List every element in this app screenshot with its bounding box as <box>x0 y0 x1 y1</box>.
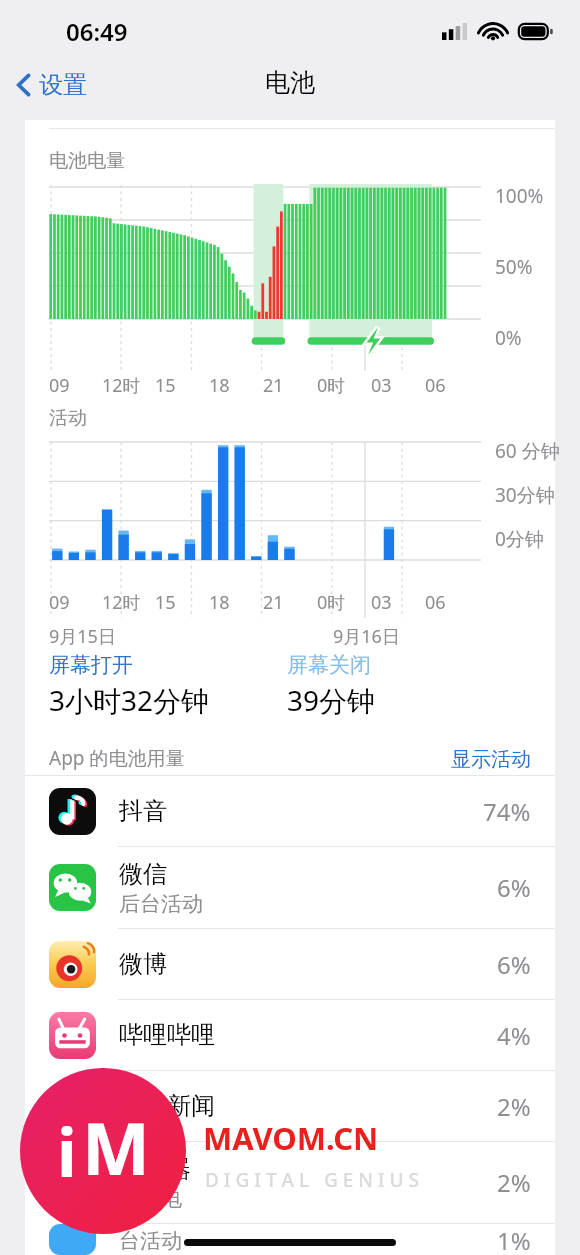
staticText: 1% <box>497 1224 531 1255</box>
staticText: 60 分钟 <box>495 438 560 464</box>
staticText: 9月15日 <box>49 624 116 649</box>
staticText: 15 <box>155 590 176 615</box>
other: App icon <box>49 864 96 911</box>
staticText: 电池 <box>265 67 315 98</box>
staticText: 100% <box>495 183 544 209</box>
button[interactable]: App icon <box>25 929 555 999</box>
staticText: 12时 <box>102 590 141 615</box>
staticText: 设置 <box>39 70 87 100</box>
staticText: 9月16日 <box>333 624 400 649</box>
button[interactable]: App icon <box>25 1142 555 1223</box>
staticText: 30分钟 <box>495 482 555 508</box>
staticText: 74% <box>483 795 531 828</box>
staticText: 21 <box>263 373 284 398</box>
staticText: 12时 <box>102 373 141 398</box>
other: App icon <box>49 1012 96 1059</box>
button[interactable]: 屏幕关闭 <box>287 652 371 678</box>
button[interactable]: App icon <box>25 1071 555 1141</box>
staticText: 电池电量 <box>49 149 125 173</box>
button[interactable]: App icon <box>25 1000 555 1070</box>
staticText: 2% <box>497 1166 531 1199</box>
staticText: 0时 <box>317 590 346 615</box>
button[interactable]: App icon <box>25 1224 555 1255</box>
staticText: M <box>82 1098 150 1196</box>
button[interactable]: 显示活动 <box>439 741 555 775</box>
staticText: 06 <box>425 373 446 398</box>
staticText: 在充电 <box>119 1186 182 1212</box>
staticText: i <box>57 1106 77 1196</box>
staticText: 3小时32分钟 <box>49 681 210 719</box>
other: App icon <box>49 1159 96 1206</box>
staticText: 03 <box>371 590 392 615</box>
staticText: 18 <box>209 590 230 615</box>
other: App icon <box>49 1224 96 1255</box>
staticText: App 的电池用量 <box>49 745 185 771</box>
staticText: 后台活动 <box>119 891 203 917</box>
other: App icon <box>49 788 96 835</box>
staticText: 台活动 <box>119 1228 182 1254</box>
staticText: 09 <box>49 373 70 398</box>
staticText: 浏览器 <box>119 1154 191 1184</box>
button[interactable]: App icon <box>25 847 555 928</box>
staticText: 6% <box>497 948 531 981</box>
staticText: D I G I T A L G E N I U S <box>205 1167 419 1193</box>
staticText: 09 <box>49 590 70 615</box>
staticText: 0时 <box>317 373 346 398</box>
staticText: 03 <box>371 373 392 398</box>
button[interactable]: 设置 <box>0 62 101 120</box>
staticText: 微信 <box>119 859 167 889</box>
staticText: 活动 <box>49 406 87 430</box>
staticText: 50% <box>495 254 533 280</box>
staticText: 4% <box>497 1019 531 1052</box>
staticText: 腾讯新闻 <box>119 1091 215 1121</box>
button[interactable]: App icon <box>25 776 555 846</box>
staticText: 15 <box>155 373 176 398</box>
staticText: 18 <box>209 373 230 398</box>
staticText: 0% <box>495 325 522 351</box>
staticText: 06:49 <box>66 15 128 48</box>
staticText: 21 <box>263 590 284 615</box>
staticText: MAVOM.CN <box>203 1117 379 1159</box>
staticText: 2% <box>497 1090 531 1123</box>
other: App icon <box>49 1083 96 1130</box>
staticText: 39分钟 <box>287 681 376 719</box>
other: App icon <box>49 941 96 988</box>
staticText: 微博 <box>119 949 167 979</box>
staticText: 0分钟 <box>495 526 544 552</box>
staticText: 哔哩哔哩 <box>119 1020 215 1050</box>
staticText: 06 <box>425 590 446 615</box>
staticText: 6% <box>497 871 531 904</box>
staticText: 抖音 <box>119 796 167 826</box>
button[interactable]: 屏幕打开 <box>49 652 133 678</box>
